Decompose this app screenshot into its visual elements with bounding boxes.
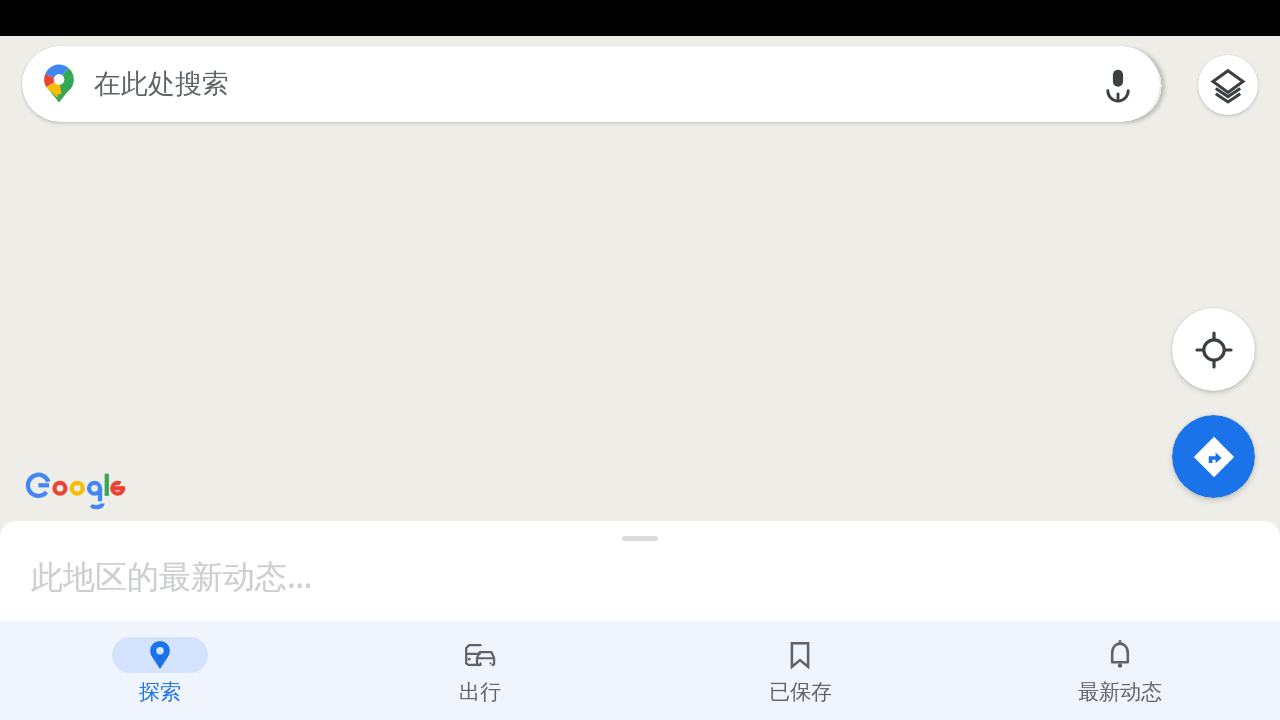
button[interactable]: 路线 (1172, 415, 1255, 498)
button[interactable]: 语音搜索 (1080, 46, 1156, 122)
staticText: 此地区的最新动态… (31, 554, 313, 598)
button[interactable]: 出行 (320, 621, 640, 720)
button[interactable]: 最新动态 (960, 621, 1280, 720)
button[interactable]: 我的位置 (1172, 308, 1255, 391)
button[interactable]: 探索 (0, 621, 320, 720)
staticText: 已保存 (769, 679, 832, 705)
button[interactable]: 已保存 (640, 621, 960, 720)
staticText: 最新动态 (1078, 679, 1162, 705)
staticText: 出行 (459, 679, 501, 705)
staticText: 在此处搜索 (94, 67, 229, 101)
button[interactable]: 此地区的最新动态… (0, 521, 1280, 621)
button[interactable]: 在此处搜索 (22, 46, 1160, 122)
button[interactable]: 图层 (1198, 55, 1258, 115)
staticText: 探索 (139, 679, 181, 705)
